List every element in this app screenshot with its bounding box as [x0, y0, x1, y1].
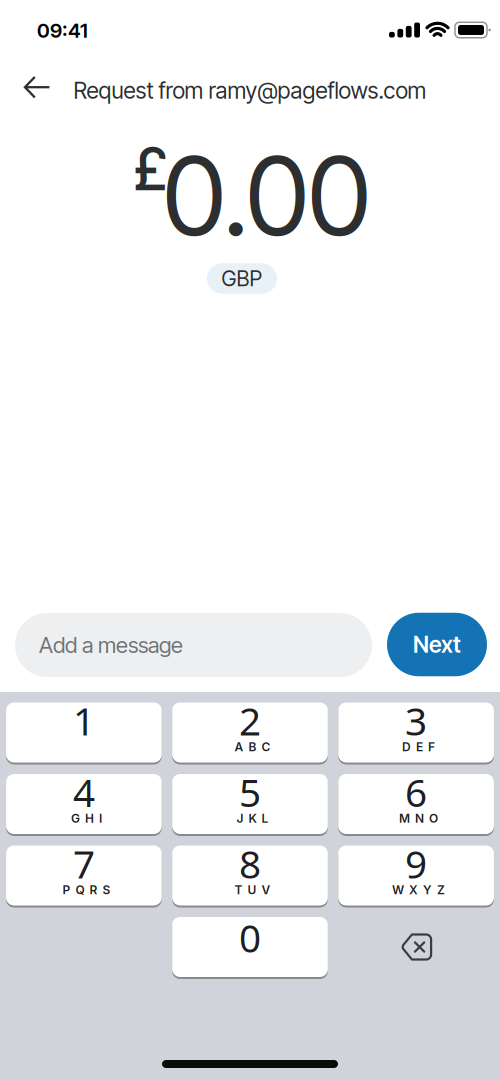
staticText: TUV: [234, 883, 270, 897]
button[interactable]: 6: [338, 773, 494, 835]
button[interactable]: 1: [6, 701, 162, 763]
staticText: JKL: [236, 811, 268, 826]
staticText: GBP: [221, 266, 262, 291]
staticText: 4: [73, 766, 95, 818]
button[interactable]: 2: [172, 701, 328, 763]
staticText: 9: [405, 838, 427, 889]
staticText: PQRS: [62, 883, 110, 897]
button[interactable]: 4: [6, 773, 162, 835]
staticText: 1: [73, 695, 95, 746]
staticText: 7: [73, 838, 95, 889]
staticText: WXYZ: [392, 883, 445, 897]
staticText: Request from ramy@pageflows.com: [73, 77, 426, 104]
staticText: ABC: [234, 740, 270, 754]
staticText: GHI: [71, 811, 102, 826]
staticText: 5: [239, 766, 261, 818]
button[interactable]: 5: [172, 773, 328, 835]
button[interactable]: 7: [6, 844, 162, 906]
staticText: 8: [239, 838, 261, 889]
staticText: 3: [405, 695, 427, 746]
staticText: £: [133, 133, 168, 204]
staticText: 0.00: [163, 131, 370, 261]
button[interactable]: GBP: [207, 263, 277, 294]
staticText: Next: [413, 631, 461, 658]
staticText: MNO: [399, 811, 438, 826]
button[interactable]: Next: [387, 613, 487, 676]
staticText: DEF: [402, 740, 435, 754]
button[interactable]: 9: [338, 844, 494, 906]
button[interactable]: Add a message: [15, 613, 372, 677]
staticText: 2: [239, 695, 261, 746]
button[interactable]: 3: [338, 701, 494, 763]
staticText: Add a message: [39, 632, 183, 658]
staticText: 09:41: [37, 18, 88, 43]
staticText: 0: [239, 912, 261, 963]
button[interactable]: 0: [172, 916, 328, 978]
staticText: 6: [405, 766, 427, 818]
button[interactable]: Back: [25, 77, 49, 97]
button[interactable]: Delete: [338, 917, 494, 977]
button[interactable]: 8: [172, 844, 328, 906]
